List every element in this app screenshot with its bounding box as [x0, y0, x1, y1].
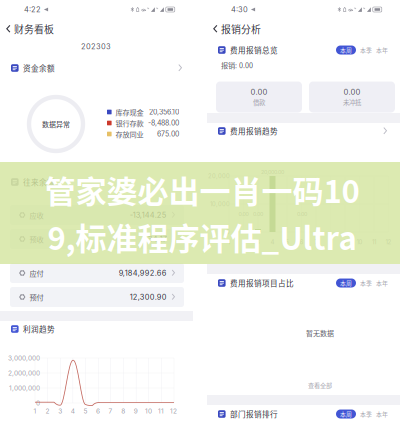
button[interactable]: 本季 — [360, 278, 372, 287]
staticText: -13,144.25 — [130, 210, 167, 219]
staticText: 本周 — [340, 410, 352, 418]
button[interactable]: 预付 — [10, 287, 184, 307]
staticText: 6 — [299, 238, 303, 246]
staticText: 4 — [270, 238, 274, 246]
staticText: 3,000,000 — [8, 354, 40, 362]
button[interactable]: 查看全部 — [300, 379, 340, 390]
staticText: 2 — [241, 238, 245, 246]
staticText: 资金余额 — [23, 62, 55, 73]
staticText: 未冲抵 — [343, 97, 361, 107]
staticText: 3 — [256, 238, 260, 246]
staticText: 675.00 — [157, 130, 179, 138]
staticText: 10 — [145, 407, 152, 415]
button[interactable]: 本年 — [376, 45, 388, 54]
staticText: 库存现金 — [116, 107, 144, 117]
staticText: 20,356.10 — [149, 108, 179, 116]
staticText: 10,000 — [210, 200, 230, 208]
staticText: 12,300.90 — [130, 292, 167, 301]
button[interactable]: 本年 — [376, 409, 388, 418]
staticText: 4:22 — [24, 5, 41, 14]
staticText: 12 — [170, 407, 177, 415]
button[interactable]: 本季 — [360, 45, 372, 54]
staticText: 本季 — [360, 279, 372, 287]
staticText: 借款 — [253, 97, 265, 107]
staticText: 11 — [372, 238, 376, 246]
staticText: 本周 — [340, 46, 352, 54]
staticText: 4 — [71, 407, 75, 415]
staticText: 本年 — [376, 410, 388, 418]
button[interactable]: 应付 — [10, 263, 184, 283]
staticText: 5 — [83, 407, 87, 415]
staticText: 5 — [285, 238, 289, 246]
button[interactable]: 费用报销总览 — [207, 41, 400, 58]
staticText: 20,000 — [208, 172, 230, 180]
staticText: 0.00 — [343, 87, 360, 97]
button[interactable]: 报销分析 — [207, 20, 265, 38]
staticText: 0 — [36, 399, 40, 407]
staticText: -8,488.00 — [148, 119, 179, 127]
staticText: 报销: 0.00 — [221, 60, 253, 70]
staticText: 10 — [356, 238, 362, 246]
staticText: 应付 — [29, 268, 43, 278]
staticText: 往来余额 — [23, 176, 55, 187]
button[interactable]: 往来余额 — [0, 173, 193, 190]
staticText: 查看全部 — [308, 381, 332, 389]
staticText: 9,标准程序评估_Ultra — [47, 214, 356, 259]
staticText: 7 — [109, 407, 113, 415]
button[interactable]: 费用报销趋势 — [207, 122, 400, 139]
staticText: 本季 — [360, 46, 372, 54]
button[interactable]: 本周 — [336, 409, 356, 418]
button[interactable]: 本季 — [360, 409, 372, 418]
button[interactable]: 财务看板 — [0, 20, 58, 38]
staticText: 0.00 — [250, 87, 267, 97]
staticText: 暂无数据 — [306, 328, 334, 338]
staticText: 9,184,992.66 — [119, 268, 167, 277]
staticText: 11 — [158, 407, 164, 415]
staticText: 3 — [58, 407, 62, 415]
staticText: 2,000,000 — [8, 369, 40, 377]
staticText: 0 — [226, 228, 230, 236]
staticText: 本年 — [376, 279, 388, 287]
staticText: 应收 — [29, 210, 43, 220]
staticText: 0.00 — [297, 211, 307, 217]
staticText: 本季 — [360, 410, 372, 418]
staticText: 管家婆必出一肖一码10 — [44, 167, 359, 212]
staticText: 20,000.00 — [261, 169, 284, 175]
staticText: 34.17 — [148, 234, 167, 243]
staticText: 存放同业 — [116, 129, 144, 139]
staticText: 8 — [121, 407, 125, 415]
staticText: 银行存款 — [116, 118, 144, 128]
staticText: 4:30 — [231, 5, 248, 14]
staticText: 利润趋势 — [23, 323, 55, 334]
staticText: 8 — [328, 238, 332, 246]
button[interactable]: 部门报销排行 — [207, 405, 400, 422]
staticText: 9 — [134, 407, 138, 415]
staticText: 9 — [343, 238, 347, 246]
staticText: 0.00 — [253, 211, 263, 217]
button[interactable]: 利润趋势 — [0, 320, 193, 337]
button[interactable]: 预收 — [10, 229, 184, 249]
staticText: 1 — [33, 407, 36, 415]
button[interactable]: 本周 — [336, 278, 356, 287]
staticText: 本年 — [376, 46, 388, 54]
staticText: 1 — [228, 238, 230, 246]
staticText: 2 — [46, 407, 50, 415]
button[interactable]: 费用报销项目占比 — [207, 274, 400, 291]
staticText: 费用报销总览 — [230, 44, 278, 55]
staticText: 202303 — [81, 42, 111, 51]
staticText: 12 — [385, 238, 391, 246]
staticText: 报销分析 — [221, 22, 261, 36]
staticText: 本周 — [340, 279, 352, 287]
button[interactable]: 本周 — [336, 45, 356, 54]
staticText: 7 — [314, 238, 317, 246]
staticText: 6 — [96, 407, 100, 415]
staticText: 费用报销项目占比 — [230, 277, 294, 288]
button[interactable]: 资金余额 — [0, 59, 193, 76]
staticText: 费用报销趋势 — [230, 125, 278, 136]
staticText: 财务看板 — [14, 22, 54, 36]
button[interactable]: 本年 — [376, 278, 388, 287]
staticText: 数据异常 — [42, 119, 70, 129]
staticText: 预收 — [29, 234, 43, 244]
button[interactable]: 应收 — [10, 205, 184, 225]
staticText: 预付 — [29, 292, 43, 302]
